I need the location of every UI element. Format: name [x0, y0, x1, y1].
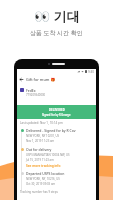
- staticText: Out for delivery: [26, 147, 52, 152]
- staticText: 상품 도착 시간 확인: [30, 29, 83, 37]
- button[interactable]: Out for delivery: [20, 147, 93, 171]
- staticText: Departed USPS location: [26, 171, 65, 176]
- staticText: 779209340000: [26, 93, 46, 97]
- button[interactable]: Back: [18, 76, 24, 82]
- staticText: 9:30: [88, 70, 94, 74]
- staticText: Last updated: Nov 1, 10:14 pm: [20, 121, 63, 125]
- staticText: NEW YORK, NY 10201, US: [26, 134, 60, 138]
- staticText: Nov 1, 2019 11:23 am: [26, 139, 55, 143]
- staticText: FedEx: [26, 88, 36, 93]
- button[interactable]: Departed USPS location: [20, 171, 93, 190]
- staticText: Oct 30, 2019 09:03 am: [26, 182, 56, 186]
- staticText: Jul 15, 2019 11:23 am: [26, 158, 54, 162]
- staticText: See more tracking info: [26, 164, 61, 168]
- button[interactable]: Delivered - Signed for by R Cov: [20, 128, 93, 147]
- staticText: USPS MANHATTAN 10004 NW, US: [26, 153, 70, 157]
- staticText: DELIVERED: [49, 108, 65, 112]
- staticText: 👀 기대: [34, 7, 80, 25]
- staticText: Tracking number has 9 steps: [20, 190, 58, 194]
- staticText: Delivered - Signed for by R Cov: [26, 128, 76, 133]
- staticText: Signed for by R George: [42, 113, 71, 117]
- staticText: NEW YORK, NY, 10216, US: [26, 177, 60, 181]
- staticText: Gift for mum 🎁: [26, 77, 56, 82]
